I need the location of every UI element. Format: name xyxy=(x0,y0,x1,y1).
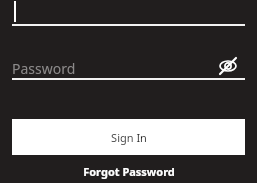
button[interactable]: Password xyxy=(12,56,245,80)
staticText: Password xyxy=(12,59,76,78)
button[interactable]: Email xyxy=(12,0,245,26)
button[interactable]: Forgot Password xyxy=(12,160,245,183)
staticText: Forgot Password xyxy=(83,164,175,179)
button[interactable]: Sign In xyxy=(12,119,245,155)
staticText: Sign In xyxy=(111,130,147,145)
button[interactable]: Show password xyxy=(214,52,242,80)
